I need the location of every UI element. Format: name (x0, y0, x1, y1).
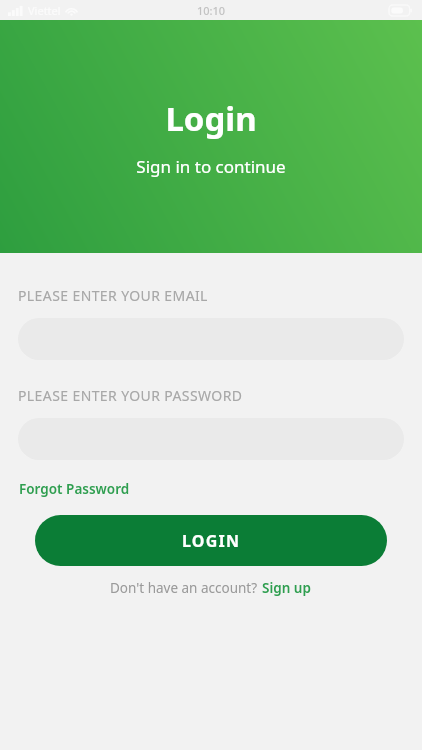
staticText: PLEASE ENTER YOUR PASSWORD (18, 386, 243, 405)
staticText: Don't have an account? (110, 579, 261, 597)
staticText: LOGIN (182, 530, 241, 552)
staticText: Viettel (28, 3, 61, 18)
staticText: PLEASE ENTER YOUR EMAIL (18, 286, 208, 305)
staticText: Sign up (262, 579, 311, 597)
button[interactable]: Forgot Password (18, 478, 131, 500)
staticText: 10:10 (197, 3, 226, 18)
button[interactable]: LOGIN (35, 515, 387, 566)
button[interactable]: Sign up (261, 577, 312, 599)
staticText: Forgot Password (19, 480, 130, 498)
staticText: Sign in to continue (136, 155, 286, 178)
staticText: Login (165, 96, 257, 141)
